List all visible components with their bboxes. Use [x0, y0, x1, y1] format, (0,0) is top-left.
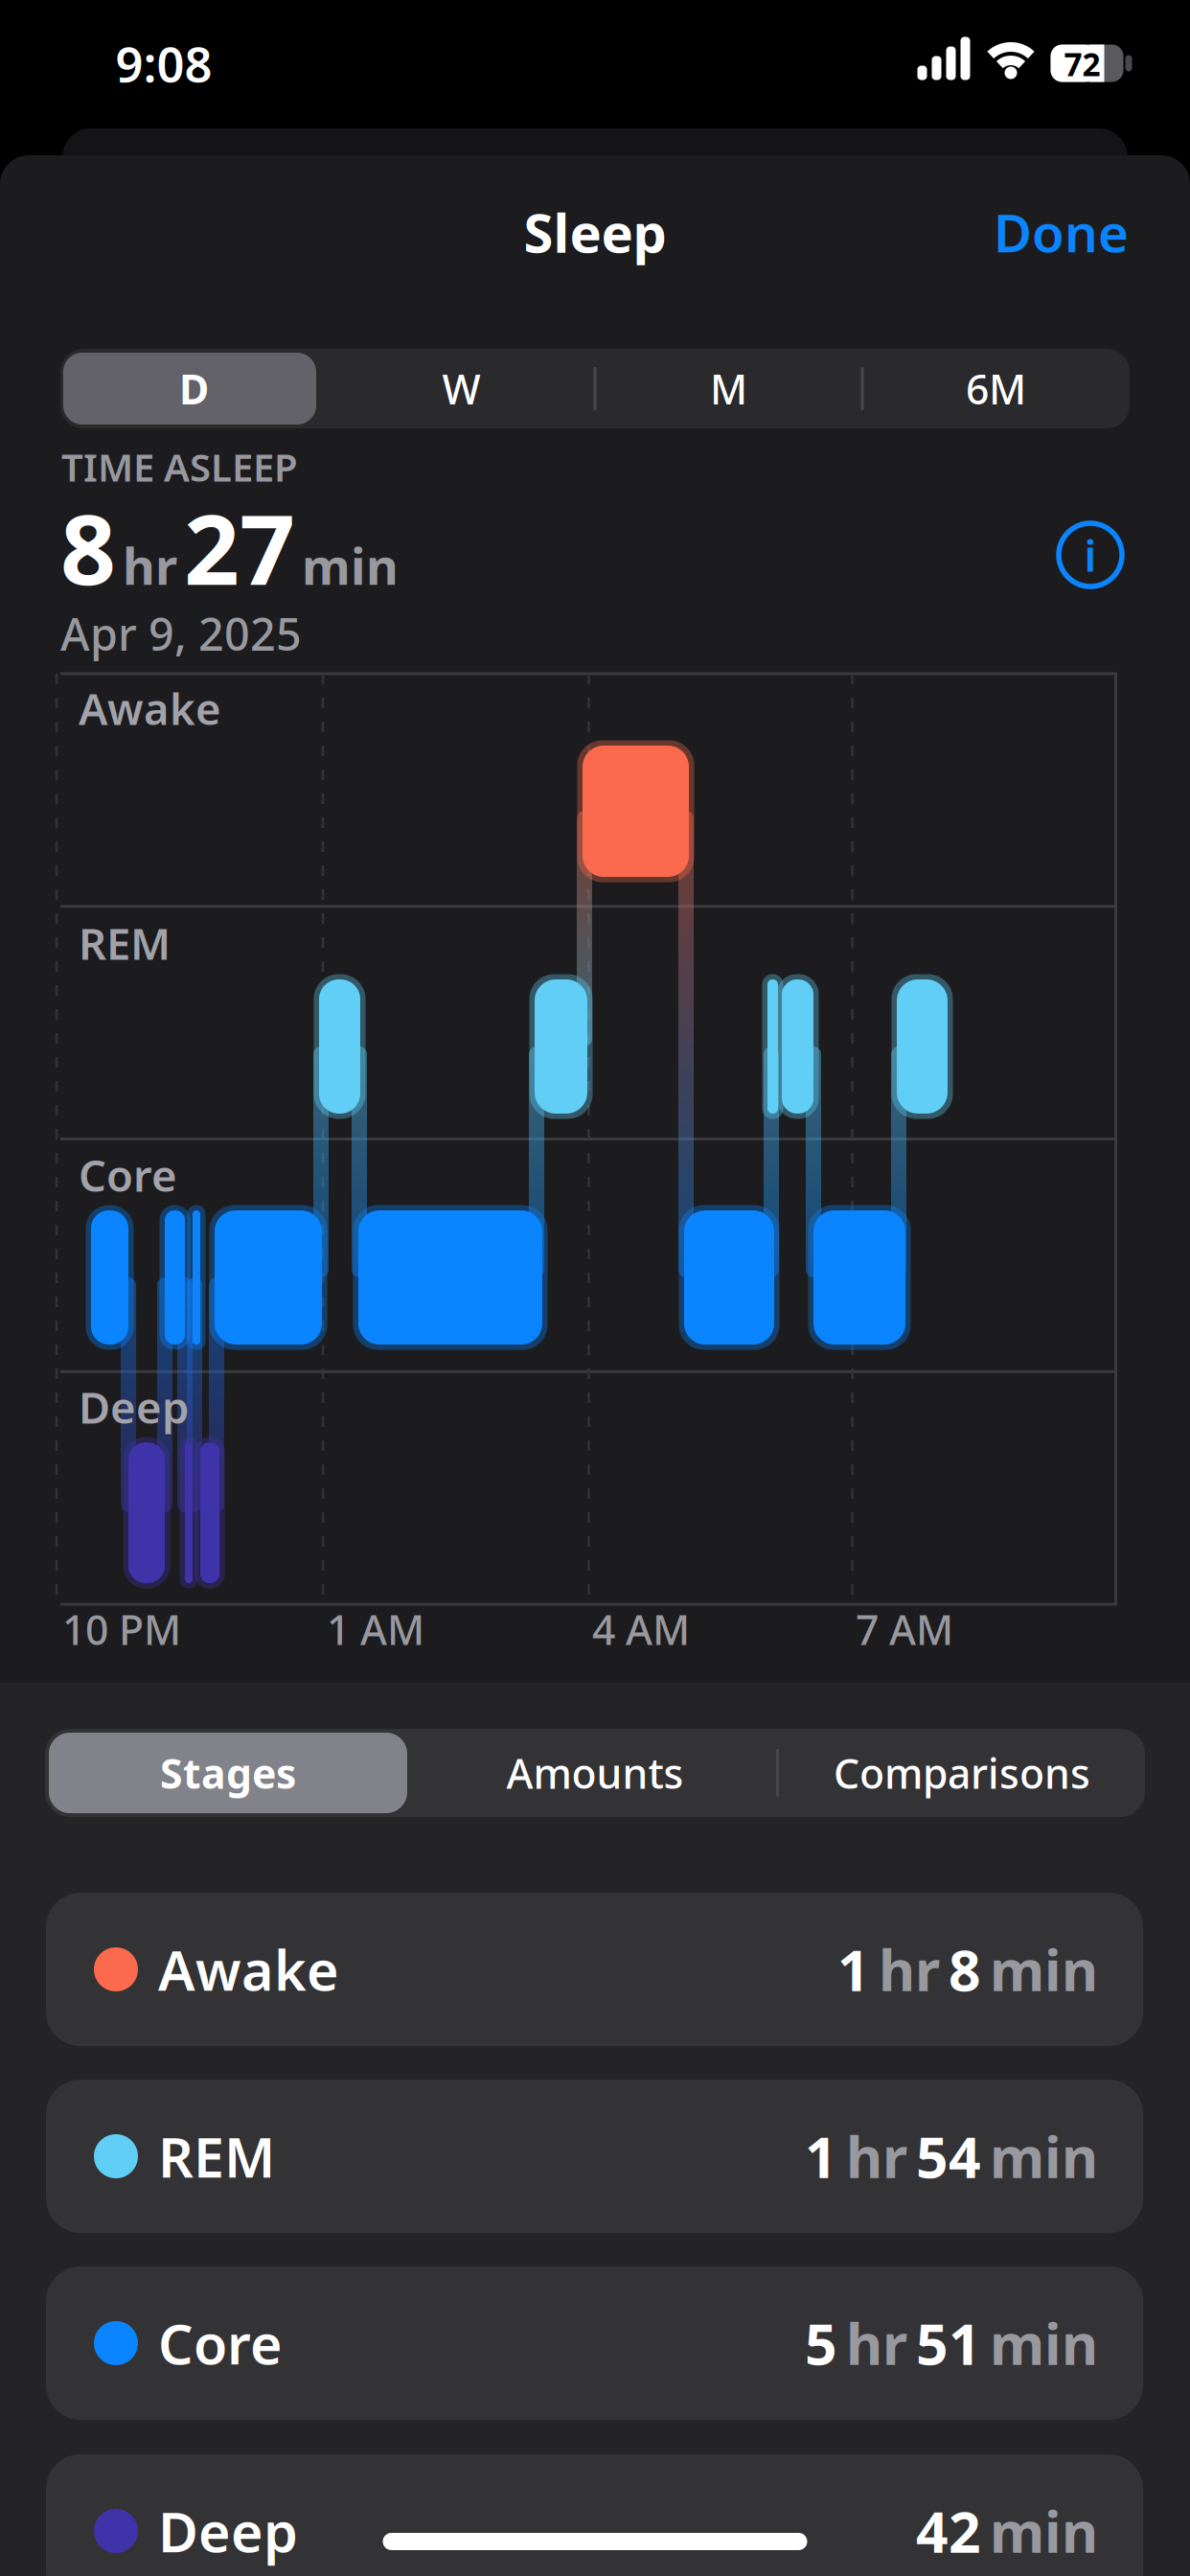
staticText: Core	[158, 2307, 283, 2380]
staticText: hr	[846, 2119, 907, 2194]
button[interactable]: M	[595, 349, 862, 428]
button[interactable]: D	[60, 349, 328, 428]
staticText: min	[990, 2119, 1098, 2194]
staticText: D	[179, 361, 209, 416]
staticText: W	[442, 361, 481, 416]
staticText: REM	[79, 914, 171, 972]
staticText: min	[990, 1932, 1098, 2007]
staticText: 10 PM	[62, 1602, 181, 1656]
staticText: 1 AM	[327, 1602, 424, 1656]
staticText: 1	[837, 1932, 870, 2007]
staticText: i	[1084, 526, 1097, 584]
staticText: Deep	[79, 1378, 189, 1436]
staticText: hr	[123, 532, 177, 599]
staticText: REM	[158, 2120, 275, 2193]
staticText: Amounts	[506, 1746, 684, 1800]
staticText: Core	[79, 1146, 177, 1204]
button[interactable]: 6M	[862, 349, 1130, 428]
button[interactable]: Amounts	[413, 1729, 777, 1817]
staticText: 9:08	[115, 31, 212, 96]
staticText: 72	[1064, 43, 1100, 85]
button[interactable]: More Information	[1057, 521, 1124, 588]
staticText: 4 AM	[592, 1602, 690, 1656]
staticText: min	[990, 2494, 1098, 2568]
button[interactable]: W	[328, 349, 595, 428]
staticText: Apr 9, 2025	[60, 604, 302, 663]
staticText: Awake	[79, 679, 221, 737]
staticText: 54	[916, 2119, 981, 2194]
staticText: 8	[60, 483, 116, 612]
staticText: 6M	[966, 361, 1026, 416]
staticText: Sleep	[524, 196, 666, 268]
button[interactable]: Stages	[46, 1729, 410, 1817]
staticText: Stages	[160, 1746, 296, 1800]
staticText: Deep	[158, 2494, 298, 2567]
staticText: 7 AM	[856, 1602, 953, 1656]
staticText: 1	[805, 2119, 837, 2194]
staticText: 5	[805, 2306, 837, 2380]
staticText: M	[710, 361, 747, 416]
staticText: min	[990, 2306, 1098, 2380]
button[interactable]: Done	[880, 197, 1129, 267]
staticText: 42	[916, 2494, 981, 2568]
staticText: Done	[994, 197, 1129, 267]
staticText: hr	[846, 2306, 907, 2380]
staticText: TIME ASLEEP	[61, 441, 298, 492]
staticText: hr	[879, 1932, 940, 2007]
button[interactable]: Comparisons	[780, 1729, 1144, 1817]
staticText: 27	[184, 483, 295, 612]
staticText: min	[302, 532, 399, 599]
staticText: Comparisons	[834, 1746, 1090, 1800]
staticText: 51	[916, 2306, 981, 2380]
staticText: Awake	[158, 1933, 339, 2006]
staticText: 8	[949, 1932, 981, 2007]
